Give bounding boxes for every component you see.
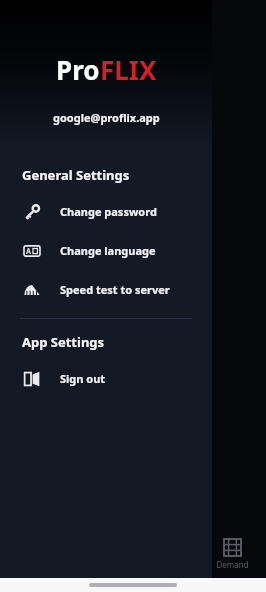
staticText: google@proflix.app xyxy=(53,110,160,125)
staticText: Change language xyxy=(60,243,156,258)
staticText: App Settings xyxy=(22,333,105,351)
staticText: Pro xyxy=(56,52,100,87)
staticText: Demand xyxy=(216,559,249,570)
staticText: Speed test to server xyxy=(60,282,170,297)
button[interactable]: Speed test to server xyxy=(0,270,212,309)
staticText: FLIX xyxy=(100,52,157,87)
button[interactable]: Demand xyxy=(206,534,258,574)
button[interactable]: Change language xyxy=(0,231,212,270)
button[interactable]: Sign out xyxy=(0,359,212,398)
button[interactable]: Change password xyxy=(0,192,212,231)
staticText: General Settings xyxy=(22,166,130,184)
staticText: Change password xyxy=(60,204,157,219)
staticText: Sign out xyxy=(60,371,106,386)
